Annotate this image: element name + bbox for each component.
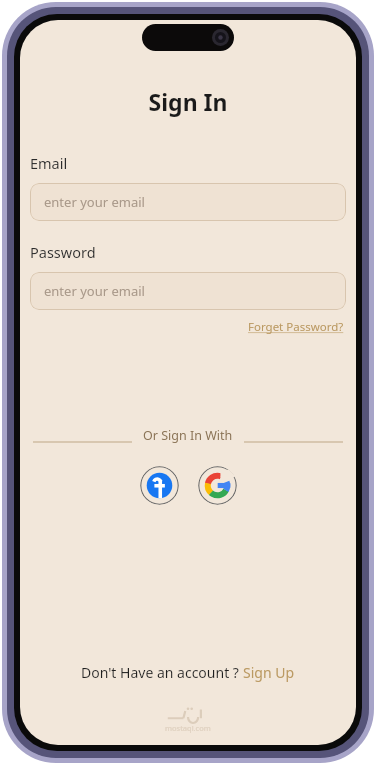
button[interactable]: enter your email bbox=[30, 183, 346, 221]
staticText: Password bbox=[30, 242, 96, 262]
button[interactable]: Sign in with Facebook bbox=[140, 466, 179, 505]
staticText: Sign In bbox=[20, 86, 356, 117]
button[interactable]: Forget Password? bbox=[246, 317, 346, 337]
staticText: enter your email bbox=[44, 282, 145, 300]
button[interactable]: Sign in with Google bbox=[198, 466, 237, 505]
button[interactable]: Don't Have an account ? bbox=[20, 659, 356, 686]
button[interactable]: enter your email bbox=[30, 272, 346, 310]
staticText: enter your email bbox=[44, 193, 145, 211]
staticText: Or Sign In With bbox=[143, 427, 233, 444]
staticText: Forget Password? bbox=[248, 319, 344, 335]
staticText: Email bbox=[30, 153, 68, 173]
staticText: mostaql.com bbox=[165, 723, 211, 733]
staticText: Sign Up bbox=[243, 663, 295, 682]
staticText: Don't Have an account ? bbox=[81, 663, 243, 682]
